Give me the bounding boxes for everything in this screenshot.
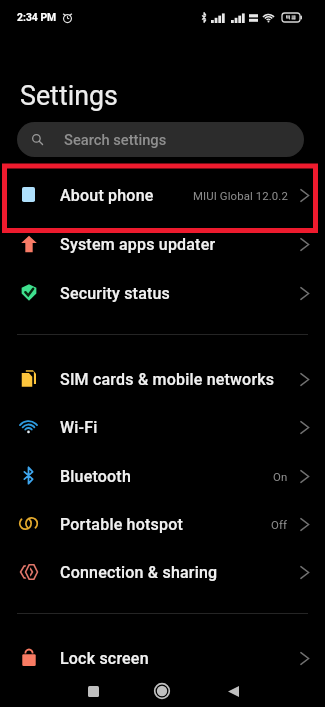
button[interactable]: About phone — [0, 171, 325, 220]
staticText: Off — [271, 518, 288, 531]
button[interactable]: Bluetooth — [0, 452, 325, 501]
staticText: MIUI Global 12.0.2 — [193, 189, 288, 202]
staticText: On — [273, 470, 288, 483]
button[interactable]: Connection & sharing — [0, 548, 325, 597]
staticText: Search settings — [64, 131, 167, 148]
button[interactable]: SIM cards & mobile networks — [0, 355, 325, 404]
button[interactable]: System apps updater — [0, 220, 325, 269]
button[interactable]: Lock screen — [0, 634, 325, 683]
staticText: Security status — [60, 284, 171, 303]
staticText: SIM cards & mobile networks — [60, 370, 275, 389]
staticText: Portable hotspot — [60, 515, 183, 534]
button[interactable]: Security status — [0, 269, 325, 318]
staticText: System apps updater — [60, 235, 216, 254]
staticText: About phone — [60, 186, 154, 205]
button[interactable]: Home — [149, 678, 175, 704]
staticText: Settings — [20, 80, 118, 111]
staticText: Wi-Fi — [60, 418, 98, 437]
button[interactable]: Portable hotspot — [0, 500, 325, 549]
staticText: Connection & sharing — [60, 563, 218, 582]
button[interactable]: Back — [221, 679, 245, 703]
staticText: Bluetooth — [60, 467, 131, 486]
button[interactable]: Recents — [81, 679, 105, 703]
staticText: 2:34 PM — [17, 11, 57, 23]
button[interactable]: Search settings — [17, 122, 304, 157]
button[interactable]: Wi-Fi — [0, 403, 325, 452]
staticText: Lock screen — [60, 649, 149, 668]
